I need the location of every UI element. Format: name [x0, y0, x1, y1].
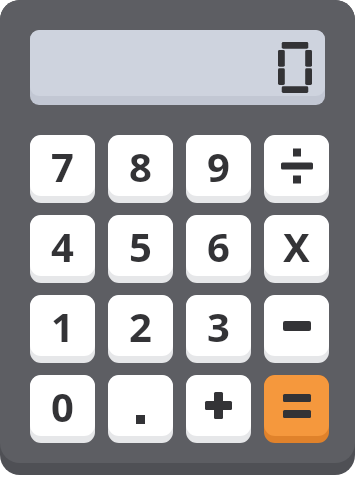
button[interactable]: 4: [30, 215, 95, 283]
staticText: 9: [207, 139, 230, 193]
button[interactable]: 7: [30, 135, 95, 203]
button[interactable]: 2: [108, 295, 173, 363]
staticText: 1: [51, 299, 74, 353]
staticText: 4: [51, 219, 74, 273]
staticText: 8: [129, 139, 152, 193]
button[interactable]: 8: [108, 135, 173, 203]
button[interactable]: 1: [30, 295, 95, 363]
button[interactable]: Minus: [264, 295, 329, 363]
staticText: 7: [51, 139, 74, 193]
staticText: 2: [129, 299, 152, 353]
staticText: 6: [207, 219, 230, 273]
button[interactable]: 5: [108, 215, 173, 283]
button[interactable]: Plus: [186, 375, 251, 443]
button[interactable]: Multiply: [264, 215, 329, 283]
button[interactable]: Equals: [264, 375, 329, 443]
staticText: 0: [51, 379, 74, 433]
button[interactable]: 0: [30, 375, 95, 443]
button[interactable]: 6: [186, 215, 251, 283]
button[interactable]: 9: [186, 135, 251, 203]
staticText: 3: [207, 299, 230, 353]
button[interactable]: 3: [186, 295, 251, 363]
staticText: 5: [129, 219, 152, 273]
staticText: X: [283, 219, 310, 273]
button[interactable]: Decimal point: [108, 375, 173, 443]
button[interactable]: Divide: [264, 135, 329, 203]
